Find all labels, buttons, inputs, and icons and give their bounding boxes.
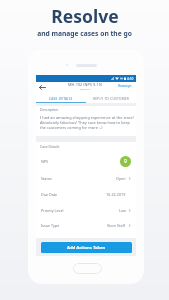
button[interactable]: Priority Level: [36, 204, 136, 217]
button[interactable]: Back: [36, 79, 49, 92]
button[interactable]: REPLY TO CUSTOMER: [86, 95, 136, 103]
staticText: 10-22-2019: [106, 192, 126, 197]
staticText: Resolve: [51, 4, 119, 28]
staticText: Priority Level: [41, 208, 64, 213]
staticText: and manage cases on the go: [37, 29, 132, 38]
button[interactable]: Reassign: [114, 79, 136, 92]
staticText: 9: [124, 158, 127, 165]
staticText: Open: [116, 176, 126, 181]
staticText: Low: [119, 208, 126, 213]
button[interactable]: Issue Type: [36, 219, 136, 232]
staticText: 4:10: [127, 77, 134, 81]
staticText: Due Date: [41, 192, 58, 197]
staticText: NPS: [41, 159, 49, 164]
staticText: Description: [40, 107, 59, 112]
staticText: NPS 9-10: [80, 87, 91, 90]
staticText: REPLY TO CUSTOMER: [93, 97, 130, 101]
staticText: Case Details: [40, 144, 60, 149]
staticText: I had an amazing shopping experience at …: [40, 115, 135, 130]
staticText: Store Staff: [107, 223, 126, 228]
staticText: MH-102 (NPS 9-10): [68, 82, 103, 87]
staticText: Issue Type: [41, 223, 60, 228]
button[interactable]: NPS: [36, 154, 136, 169]
staticText: CASE DETAILS: [49, 97, 73, 101]
staticText: Reassign: [118, 84, 132, 88]
button[interactable]: Due Date: [36, 188, 136, 201]
staticText: Add Actions Taken: [67, 245, 106, 251]
button[interactable]: Status: [36, 172, 136, 185]
button[interactable]: Add Actions Taken: [41, 242, 132, 253]
button[interactable]: CASE DETAILS: [36, 95, 86, 103]
staticText: Status: [41, 176, 52, 181]
